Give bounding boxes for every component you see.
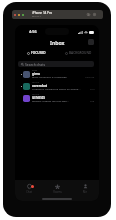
staticText: girea: testimony is a message — [32, 75, 67, 78]
button[interactable]: Rooms — [43, 182, 71, 192]
staticText: service — [32, 93, 40, 96]
staticText: corerobot — [32, 84, 48, 88]
button[interactable]: Screenshot — [93, 13, 96, 16]
staticText: Me — [83, 190, 87, 194]
staticText: iOS 16.1 — [32, 15, 41, 18]
button[interactable]: girea — [15, 68, 99, 80]
staticText: iPhone 14 Pro — [32, 11, 53, 15]
staticText: 4:56 PM — [85, 75, 95, 78]
staticText: genesis: created the chat with… — [32, 99, 70, 102]
staticText: Chat — [26, 190, 32, 194]
staticText: GENESIS — [32, 96, 45, 100]
button[interactable]: FOCUSED — [15, 51, 57, 55]
button[interactable]: Rotate — [87, 13, 90, 16]
button[interactable]: Profile — [88, 39, 94, 45]
staticText: Tue — [90, 99, 95, 102]
staticText: girea — [32, 69, 38, 72]
button[interactable]: BACKGROUND — [57, 51, 99, 55]
staticText: Inbox — [50, 39, 65, 46]
staticText: Thu — [90, 87, 95, 90]
staticText: corerobot: created the status on Github… — [32, 87, 81, 90]
staticText: 4:56 — [29, 29, 37, 34]
staticText: service — [32, 81, 40, 84]
staticText: FOCUSED — [31, 51, 46, 55]
staticText: girea — [32, 72, 40, 76]
button[interactable]: Me — [71, 182, 99, 192]
staticText: Rooms — [53, 190, 62, 194]
button[interactable]: Chat — [15, 182, 43, 192]
button[interactable]: service — [15, 92, 99, 104]
button[interactable]: Search chats — [18, 61, 94, 67]
staticText: Search chats — [25, 62, 46, 67]
button[interactable]: service — [15, 80, 99, 92]
staticText: BACKGROUND — [69, 51, 92, 55]
